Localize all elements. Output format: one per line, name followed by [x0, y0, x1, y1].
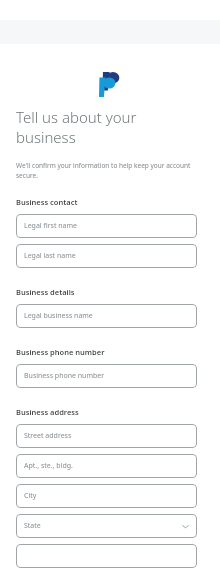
button[interactable]: Legal first name — [16, 214, 197, 238]
staticText: Legal first name — [24, 221, 189, 231]
button[interactable] — [16, 544, 197, 568]
staticText: Apt., ste., bldg. — [24, 461, 189, 471]
button[interactable]: Business phone number — [16, 364, 197, 388]
button[interactable]: Street address — [16, 424, 197, 448]
other: PayPal — [99, 72, 121, 97]
staticText: Business phone number — [24, 371, 189, 381]
staticText: Business details — [16, 287, 204, 297]
staticText: Tell us about your business — [16, 107, 204, 147]
staticText: Business phone number — [16, 347, 204, 357]
button[interactable]: Apt., ste., bldg. — [16, 454, 197, 478]
button[interactable]: State — [16, 514, 197, 538]
button[interactable]: City — [16, 484, 197, 508]
staticText: Legal business name — [24, 311, 189, 321]
staticText: We'll confirm your information to help k… — [16, 161, 198, 180]
staticText: State — [24, 521, 182, 531]
staticText: Business address — [16, 407, 204, 417]
staticText: City — [24, 491, 189, 501]
staticText: Legal last name — [24, 251, 189, 261]
button[interactable]: Legal business name — [16, 304, 197, 328]
staticText: Street address — [24, 431, 189, 441]
button[interactable]: Legal last name — [16, 244, 197, 268]
staticText: Business contact — [16, 197, 204, 207]
